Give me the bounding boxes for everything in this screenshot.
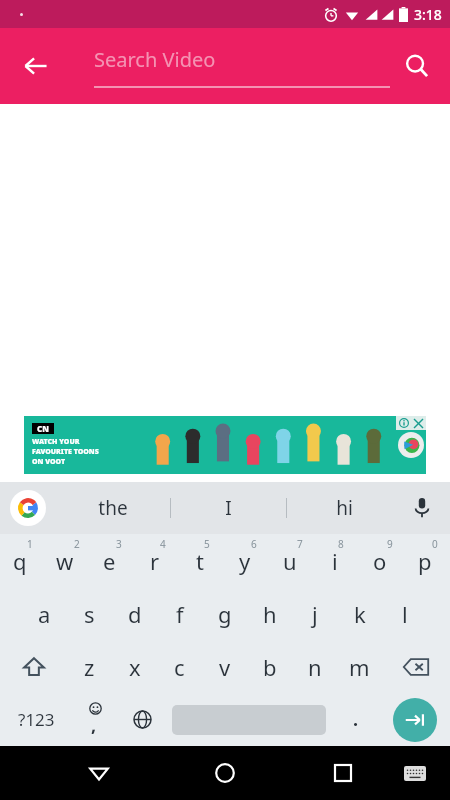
staticText: 6 xyxy=(251,537,257,551)
button[interactable]: Close ad xyxy=(411,416,426,430)
button[interactable]: x xyxy=(112,640,157,693)
staticText: Search Video xyxy=(94,46,216,73)
button[interactable]: Voice input xyxy=(404,490,440,526)
staticText: f xyxy=(176,599,184,629)
button[interactable]: o xyxy=(360,534,405,587)
staticText: CN xyxy=(37,423,49,434)
button[interactable]: m xyxy=(337,640,382,693)
button[interactable]: f xyxy=(157,587,202,640)
staticText: w xyxy=(56,546,74,576)
staticText: 0 xyxy=(432,537,438,551)
staticText: r xyxy=(150,546,160,576)
button[interactable]: Home xyxy=(204,752,246,794)
staticText: t xyxy=(196,546,204,576)
button[interactable]: CN xyxy=(24,416,426,474)
staticText: b xyxy=(263,652,277,682)
staticText: , xyxy=(91,713,97,738)
button[interactable]: Back xyxy=(78,752,120,794)
staticText: 8 xyxy=(338,537,344,551)
button[interactable]: z xyxy=(67,640,112,693)
button[interactable]: a xyxy=(22,587,67,640)
staticText: FAVOURITE TOONS xyxy=(32,447,99,457)
staticText: e xyxy=(103,546,116,576)
button[interactable]: Back xyxy=(12,42,60,90)
button[interactable]: p xyxy=(405,534,450,587)
staticText: c xyxy=(174,652,185,682)
button[interactable]: b xyxy=(247,640,292,693)
staticText: 3:18 xyxy=(414,5,442,24)
button[interactable]: q xyxy=(0,534,45,587)
button[interactable]: Enter xyxy=(393,698,437,742)
staticText: 7 xyxy=(297,537,303,551)
button[interactable]: y xyxy=(225,534,270,587)
button[interactable]: Hide keyboard xyxy=(396,754,434,792)
button[interactable]: w xyxy=(45,534,90,587)
staticText: j xyxy=(312,599,318,629)
button[interactable]: r xyxy=(135,534,180,587)
button[interactable]: k xyxy=(337,587,382,640)
button[interactable]: ?123 xyxy=(0,693,72,746)
button[interactable]: h xyxy=(247,587,292,640)
button[interactable]: I xyxy=(171,482,286,534)
staticText: i xyxy=(332,546,338,576)
staticText: n xyxy=(308,652,322,682)
staticText: hi xyxy=(336,495,353,521)
staticText: I xyxy=(225,495,232,521)
button[interactable]: t xyxy=(180,534,225,587)
button[interactable]: Emoji xyxy=(72,693,119,746)
button[interactable]: Search xyxy=(394,43,440,89)
button[interactable]: n xyxy=(292,640,337,693)
staticText: g xyxy=(218,599,232,629)
button[interactable]: Recents xyxy=(322,752,364,794)
staticText: v xyxy=(219,652,231,682)
staticText: the xyxy=(98,495,128,521)
staticText: m xyxy=(349,652,370,682)
staticText: 5 xyxy=(204,537,210,551)
staticText: q xyxy=(13,546,27,576)
staticText: h xyxy=(263,599,277,629)
button[interactable]: hi xyxy=(287,482,402,534)
staticText: 3 xyxy=(116,537,122,551)
button[interactable]: g xyxy=(202,587,247,640)
staticText: 1 xyxy=(27,537,33,551)
staticText: 2 xyxy=(74,537,80,551)
button[interactable]: Search Video xyxy=(94,44,390,88)
staticText: p xyxy=(418,546,432,576)
button[interactable]: e xyxy=(90,534,135,587)
staticText: y xyxy=(239,546,251,576)
button[interactable]: c xyxy=(157,640,202,693)
button[interactable]: Backspace xyxy=(382,640,450,693)
staticText: l xyxy=(402,599,408,629)
staticText: ON VOOT xyxy=(32,457,66,467)
staticText: k xyxy=(354,599,366,629)
button[interactable]: . xyxy=(332,693,379,746)
button[interactable]: s xyxy=(67,587,112,640)
staticText: 9 xyxy=(387,537,393,551)
button[interactable]: u xyxy=(270,534,315,587)
button[interactable]: Ad info xyxy=(396,416,411,430)
staticText: z xyxy=(84,652,95,682)
staticText: 4 xyxy=(160,537,166,551)
button[interactable]: Change language xyxy=(119,693,166,746)
staticText: x xyxy=(129,652,141,682)
staticText: WATCH YOUR xyxy=(32,437,80,447)
staticText: s xyxy=(84,599,95,629)
button[interactable]: j xyxy=(292,587,337,640)
button[interactable]: i xyxy=(315,534,360,587)
button[interactable]: Shift xyxy=(0,640,67,693)
button[interactable]: v xyxy=(202,640,247,693)
staticText: o xyxy=(373,546,387,576)
button[interactable]: d xyxy=(112,587,157,640)
button[interactable]: Google xyxy=(10,490,46,526)
button[interactable]: the xyxy=(56,482,170,534)
button[interactable]: l xyxy=(382,587,427,640)
staticText: . xyxy=(353,707,359,732)
staticText: u xyxy=(283,546,297,576)
staticText: a xyxy=(38,599,51,629)
staticText: ?123 xyxy=(18,708,55,731)
staticText: d xyxy=(128,599,142,629)
